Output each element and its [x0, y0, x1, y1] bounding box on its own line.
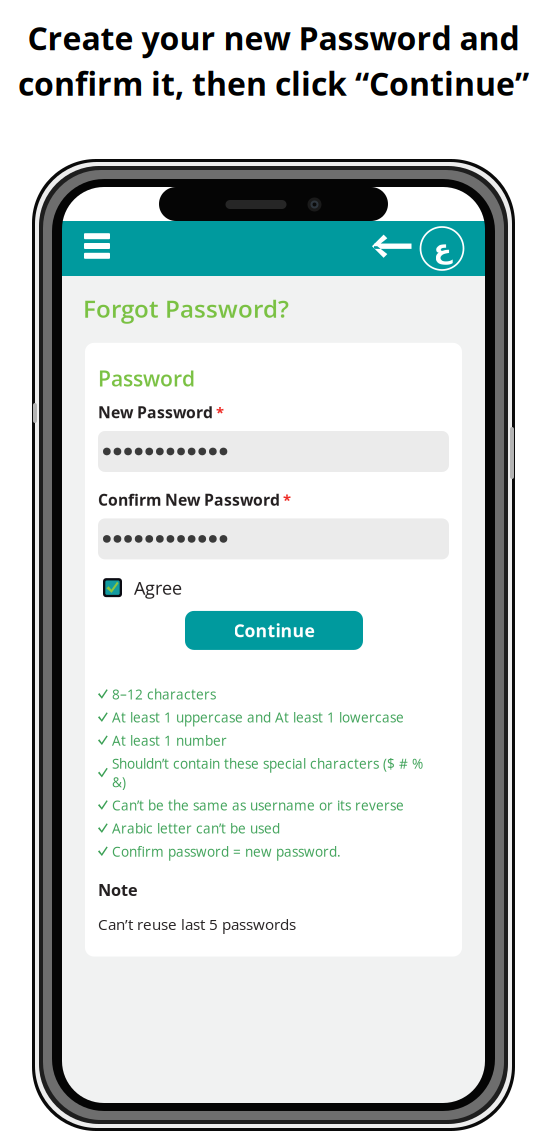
- staticText: 8–12 characters: [112, 685, 216, 703]
- staticText: Confirm New Password: [98, 489, 280, 510]
- staticText: Can’t be the same as username or its rev…: [112, 796, 404, 814]
- staticText: Password: [98, 364, 195, 393]
- staticText: Continue: [233, 618, 314, 642]
- staticText: Can’t reuse last 5 passwords: [98, 914, 296, 934]
- staticText: Confirm password = new password.: [112, 842, 341, 861]
- staticText: Arabic letter can’t be used: [112, 819, 280, 837]
- staticText: Create your new Password and: [27, 16, 519, 60]
- staticText: At least 1 number: [112, 731, 227, 750]
- button[interactable]: Menu: [62, 221, 120, 276]
- staticText: ع: [433, 233, 451, 264]
- staticText: Agree: [134, 575, 182, 600]
- staticText: Shouldn’t contain these special characte…: [112, 754, 423, 791]
- button[interactable]: Switch to Arabic: [413, 226, 485, 270]
- button[interactable]: Continue: [185, 611, 363, 650]
- staticText: Forgot Password?: [83, 292, 289, 325]
- button[interactable]: Back: [366, 224, 413, 273]
- staticText: New Password: [98, 402, 213, 423]
- staticText: *: [283, 490, 291, 510]
- staticText: At least 1 uppercase and At least 1 lowe…: [112, 708, 404, 726]
- button[interactable]: Agree: [98, 575, 182, 600]
- staticText: Note: [98, 879, 138, 901]
- staticText: confirm it, then click “Continue”: [18, 62, 529, 105]
- staticText: *: [216, 402, 224, 422]
